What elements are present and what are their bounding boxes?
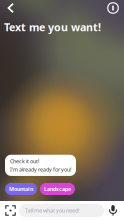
staticText: Text me you want! <box>4 20 101 34</box>
button[interactable]: Voice input <box>104 201 122 219</box>
button[interactable]: Mountain <box>5 183 37 195</box>
staticText: Tell me what you need! <box>25 207 79 214</box>
button[interactable]: Scan <box>2 201 19 219</box>
button[interactable]: Info <box>105 0 121 16</box>
button[interactable]: Tell me what you need! <box>19 204 104 217</box>
button[interactable]: Landscape <box>40 183 75 195</box>
staticText: Mountain <box>9 185 33 192</box>
button[interactable]: Back <box>3 0 19 16</box>
staticText: I'm already ready for you! <box>10 166 71 173</box>
staticText: Check it out! <box>10 158 39 165</box>
staticText: Landscape <box>44 185 71 192</box>
